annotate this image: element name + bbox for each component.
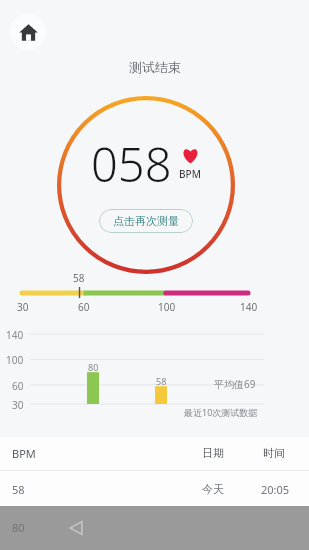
staticText: 今天 — [202, 482, 224, 496]
staticText: 测试结束 — [129, 59, 181, 75]
button[interactable]: Home — [10, 14, 46, 50]
staticText: 时间 — [263, 446, 285, 460]
staticText: 100 — [6, 353, 24, 367]
staticText: 140 — [240, 300, 258, 314]
staticText: 日期 — [202, 446, 224, 460]
staticText: 最近10次测试数据 — [184, 406, 258, 418]
button[interactable]: Back — [60, 512, 92, 544]
staticText: 60 — [12, 379, 24, 393]
staticText: 058 — [91, 132, 172, 196]
button[interactable]: 点击再次测量 — [99, 209, 193, 233]
staticText: 80 — [12, 520, 25, 535]
staticText: 80 — [88, 361, 99, 373]
staticText: 58 — [156, 375, 167, 387]
staticText: 140 — [6, 328, 24, 342]
staticText: 平均值69 — [214, 377, 256, 391]
staticText: 100 — [158, 300, 176, 314]
staticText: 58 — [12, 482, 25, 497]
staticText: BPM — [179, 167, 201, 181]
staticText: 点击再次测量 — [113, 214, 179, 228]
staticText: 30 — [17, 300, 29, 314]
button[interactable]: 58 — [0, 471, 309, 507]
staticText: 20:05 — [261, 482, 290, 497]
staticText: 60 — [78, 300, 90, 314]
staticText: BPM — [12, 446, 36, 461]
staticText: 58 — [73, 271, 85, 285]
staticText: 30 — [12, 398, 24, 412]
